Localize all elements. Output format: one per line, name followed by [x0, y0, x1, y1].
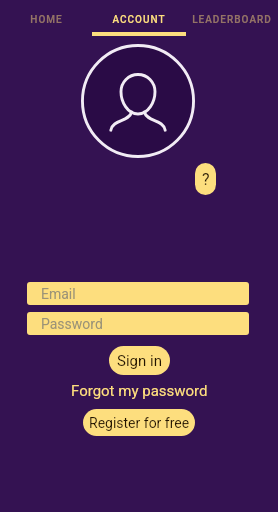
staticText: Register for free: [89, 415, 190, 431]
staticText: ?: [202, 170, 210, 189]
staticText: Sign in: [117, 352, 162, 370]
button[interactable]: Register for free: [83, 409, 195, 436]
staticText: Email: [41, 286, 76, 302]
button[interactable]: Help: [195, 163, 216, 195]
button[interactable]: Sign in: [109, 346, 170, 375]
button[interactable]: LEADERBOARD: [185, 0, 278, 37]
button[interactable]: Email: [27, 282, 249, 305]
button[interactable]: Password: [27, 312, 249, 335]
staticText: Forgot my password: [71, 382, 208, 400]
staticText: ACCOUNT: [112, 14, 166, 26]
staticText: LEADERBOARD: [192, 14, 272, 26]
staticText: Password: [41, 316, 103, 332]
button[interactable]: ACCOUNT: [92, 0, 185, 37]
button[interactable]: HOME: [0, 0, 92, 37]
button[interactable]: Forgot my password: [60, 381, 218, 401]
staticText: HOME: [30, 14, 63, 26]
